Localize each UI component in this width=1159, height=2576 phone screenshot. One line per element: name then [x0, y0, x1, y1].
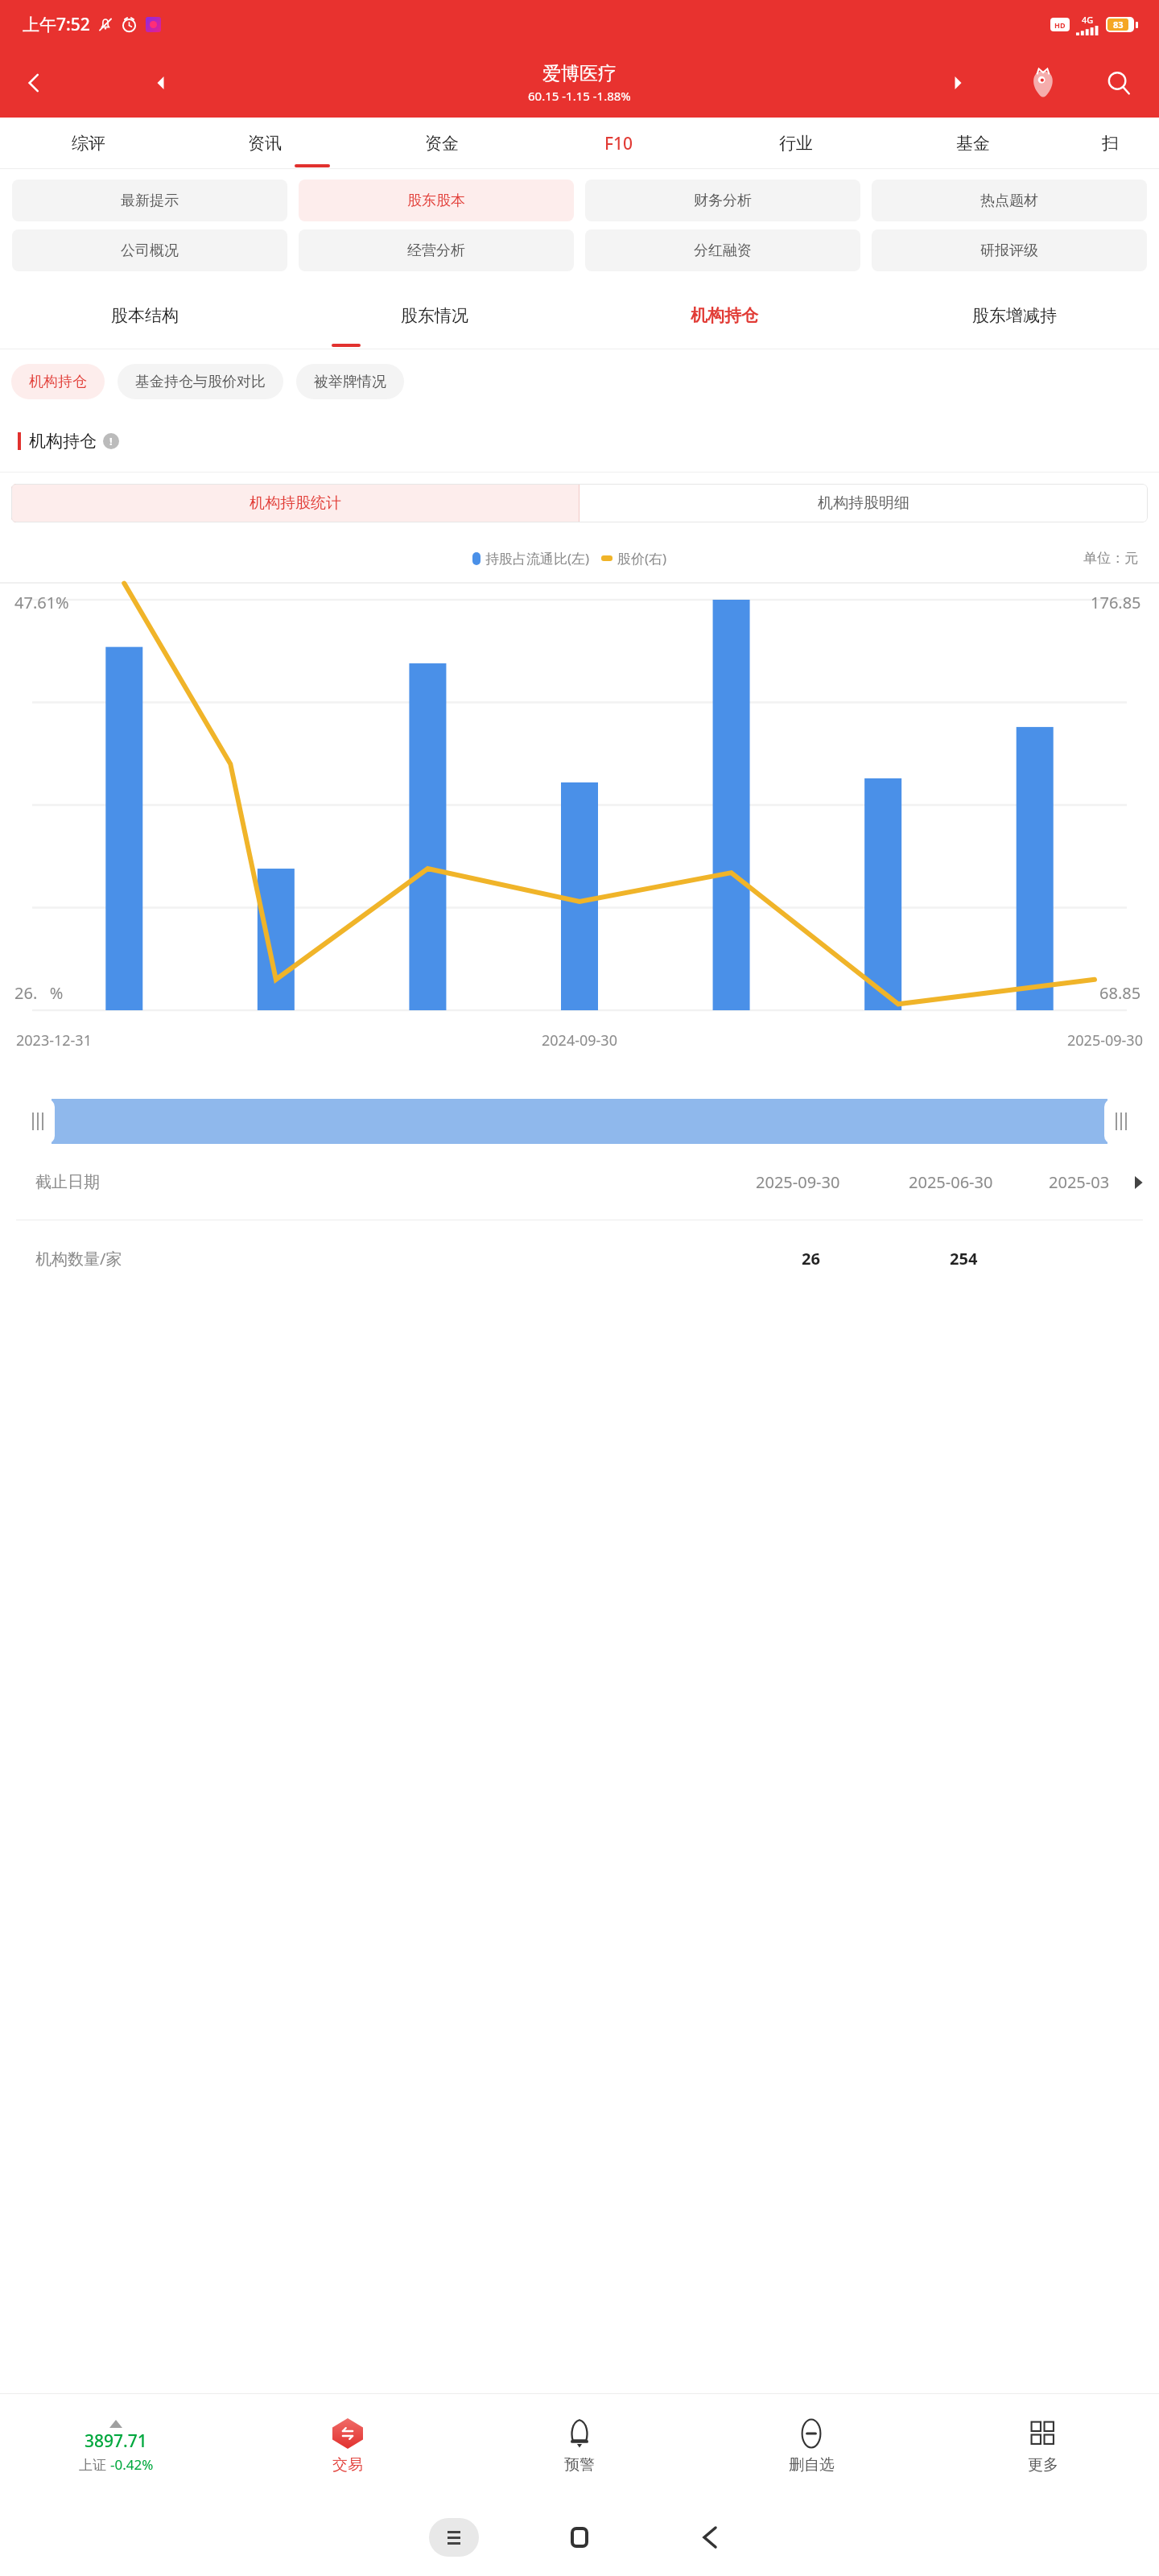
staticText: HD [1054, 20, 1066, 30]
staticText: 单位：元 [1083, 550, 1138, 567]
staticText: 最新提示 [121, 192, 179, 210]
button[interactable]: 综评 [0, 118, 176, 169]
button[interactable]: 热点题材 [872, 180, 1147, 221]
staticText: 2024-09-30 [542, 1030, 617, 1051]
staticText: 2025-09-30 [1067, 1030, 1143, 1051]
staticText: 股东股本 [407, 192, 465, 210]
button[interactable]: 股东情况 [290, 282, 579, 349]
button[interactable]: Info [103, 433, 119, 449]
button[interactable]: 资讯 [176, 118, 353, 169]
button[interactable]: Mascot [1021, 60, 1066, 105]
button[interactable]: 机构持股统计 [11, 484, 579, 522]
staticText: 基金 [956, 133, 990, 154]
staticText: 公司概况 [121, 242, 179, 260]
staticText: 机构持股统计 [250, 493, 341, 513]
staticText: 上午7:52 [23, 13, 90, 36]
staticText: 机构持仓 [29, 373, 87, 391]
button[interactable]: 股东增减持 [869, 282, 1159, 349]
button[interactable]: 预警 [464, 2394, 695, 2499]
button[interactable]: 被举牌情况 [296, 364, 404, 399]
staticText: 47.61% [14, 592, 69, 613]
staticText: -0.42% [110, 2455, 154, 2474]
staticText: 财务分析 [694, 192, 752, 210]
button[interactable]: Next stock [940, 65, 975, 101]
button[interactable]: 股本结构 [0, 282, 290, 349]
button[interactable]: 机构持仓 [579, 282, 869, 349]
button[interactable]: 资金 [353, 118, 530, 169]
staticText: 60.15 -1.15 -1.88% [528, 88, 631, 104]
staticText: 机构持股明细 [818, 493, 909, 513]
staticText: 机构持仓 [29, 431, 97, 452]
button[interactable]: 机构持股明细 [579, 484, 1148, 522]
staticText: 热点题材 [980, 192, 1038, 210]
button[interactable]: 经营分析 [299, 229, 574, 271]
button[interactable]: Previous stock [143, 65, 179, 101]
staticText: 删自选 [789, 2455, 835, 2475]
staticText: 经营分析 [407, 242, 465, 260]
staticText: 机构数量/家 [35, 1248, 122, 1269]
staticText: 截止日期 [35, 1172, 100, 1192]
staticText: F10 [604, 132, 633, 155]
staticText: 4G [1082, 14, 1094, 26]
button[interactable]: 删自选 [695, 2394, 927, 2499]
staticText: 26. % [14, 982, 64, 1004]
button[interactable]: 交易 [232, 2394, 464, 2499]
staticText: 2025-03 [1049, 1171, 1110, 1193]
staticText: 股东情况 [401, 305, 468, 326]
button[interactable]: 机构持仓 [11, 364, 105, 399]
button[interactable]: 分红融资 [585, 229, 860, 271]
button[interactable]: Search [1096, 60, 1141, 105]
staticText: 176.85 [1091, 592, 1141, 613]
staticText: 2023-12-31 [16, 1030, 92, 1051]
button[interactable]: 基金 [885, 118, 1062, 169]
staticText: 扫 [1102, 133, 1119, 154]
button[interactable]: 研报评级 [872, 229, 1147, 271]
staticText: 3897.71 [85, 2429, 147, 2453]
staticText: 爱博医疗 [542, 62, 617, 85]
staticText: ! [109, 434, 113, 448]
button[interactable]: 机构数量/家 [0, 1220, 1159, 1296]
staticText: 持股占流通比(左) [485, 549, 590, 568]
button[interactable]: F10 [530, 118, 707, 169]
button[interactable]: Back [691, 2518, 729, 2557]
staticText: 股东增减持 [972, 305, 1057, 326]
staticText: 上证 [79, 2455, 110, 2474]
staticText: 机构持仓 [691, 305, 758, 326]
staticText: 基金持仓与股价对比 [135, 373, 266, 391]
button[interactable]: 最新提示 [12, 180, 287, 221]
button[interactable]: Chart range [21, 1099, 1138, 1144]
staticText: 资金 [425, 133, 459, 154]
staticText: 被举牌情况 [314, 373, 386, 391]
button[interactable]: 公司概况 [12, 229, 287, 271]
staticText: 分红融资 [694, 242, 752, 260]
staticText: 26 [802, 1248, 820, 1269]
staticText: 83 [1113, 19, 1124, 31]
staticText: 综评 [72, 133, 105, 154]
staticText: 股价(右) [617, 549, 667, 568]
button[interactable]: 更多 [927, 2394, 1159, 2499]
staticText: 更多 [1028, 2455, 1058, 2475]
staticText: 股本结构 [111, 305, 179, 326]
button[interactable]: 扫 [1062, 118, 1159, 169]
button[interactable]: Back [11, 60, 56, 105]
staticText: 交易 [332, 2455, 363, 2475]
button[interactable]: 基金持仓与股价对比 [118, 364, 283, 399]
button[interactable]: 行业 [707, 118, 885, 169]
staticText: 68.85 [1099, 982, 1141, 1004]
staticText: 预警 [564, 2455, 595, 2475]
staticText: 254 [950, 1248, 978, 1269]
button[interactable]: 股东股本 [299, 180, 574, 221]
button[interactable]: 3897.71 [0, 2394, 232, 2499]
staticText: 资讯 [248, 133, 282, 154]
staticText: 2025-09-30 [756, 1171, 840, 1193]
button[interactable]: 财务分析 [585, 180, 860, 221]
button[interactable]: 截止日期 [0, 1144, 1159, 1220]
staticText: 行业 [779, 133, 813, 154]
staticText: 研报评级 [980, 242, 1038, 260]
button[interactable]: Home [560, 2518, 599, 2557]
button[interactable]: Recent apps [429, 2518, 479, 2557]
staticText: 2025-06-30 [909, 1171, 993, 1193]
